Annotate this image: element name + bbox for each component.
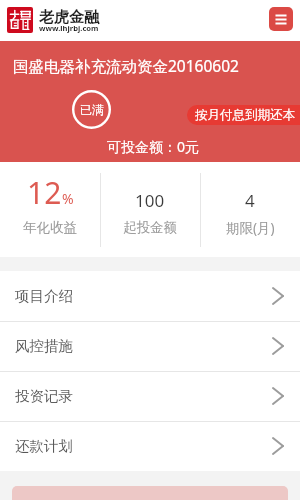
staticText: 年化收益 [23, 219, 77, 236]
button[interactable]: 风控措施 [0, 321, 300, 371]
staticText: 投资记录 [15, 387, 73, 405]
staticText: 期限(月) [226, 219, 275, 237]
staticText: 100 [135, 189, 165, 212]
staticText: 项目介绍 [15, 287, 73, 305]
button[interactable]: 项目介绍 [0, 271, 300, 321]
staticText: www.lhjrbj.com [39, 23, 99, 33]
staticText: 风控措施 [15, 337, 73, 355]
staticText: % [62, 189, 74, 208]
staticText: 还款计划 [15, 437, 73, 455]
button[interactable]: 还款计划 [0, 421, 300, 471]
staticText: 已满 [80, 102, 104, 117]
staticText: 老虎金融 [39, 8, 99, 27]
staticText: 可投金额：0元 [107, 137, 200, 156]
staticText: 国盛电器补充流动资金20160602 [13, 55, 239, 76]
button[interactable]: 投资记录 [0, 371, 300, 421]
staticText: 4 [245, 189, 255, 212]
staticText: 12 [27, 172, 62, 213]
staticText: 起投金额 [123, 219, 177, 236]
button[interactable]: Menu [269, 7, 293, 31]
staticText: 按月付息到期还本 [195, 107, 295, 123]
